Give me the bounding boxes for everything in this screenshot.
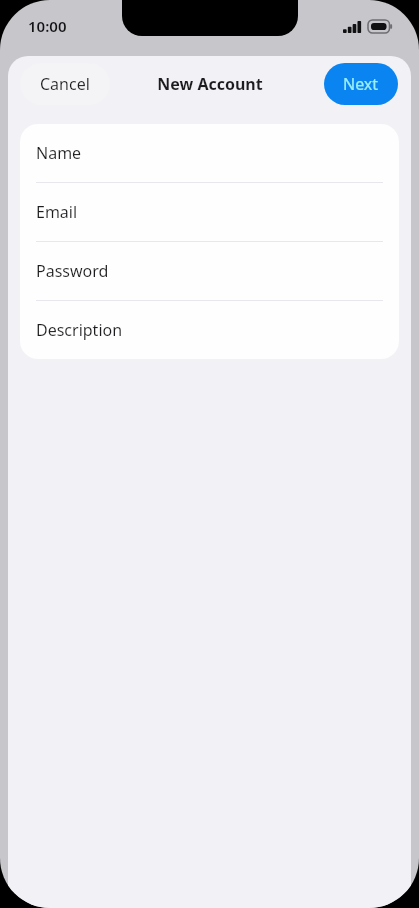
staticText: 10:00 [28,16,67,36]
staticText: Email [36,201,78,223]
staticText: Next [343,73,379,95]
button[interactable]: Next [324,63,398,105]
staticText: Password [36,260,109,282]
staticText: Name [36,142,82,164]
button[interactable]: Description [20,301,399,359]
staticText: Description [36,319,123,341]
button[interactable]: Email [20,183,399,241]
staticText: New Account [157,73,263,95]
button[interactable]: Name [20,124,399,182]
button[interactable]: Password [20,242,399,300]
staticText: Cancel [40,73,90,95]
button[interactable]: Cancel [20,63,110,105]
